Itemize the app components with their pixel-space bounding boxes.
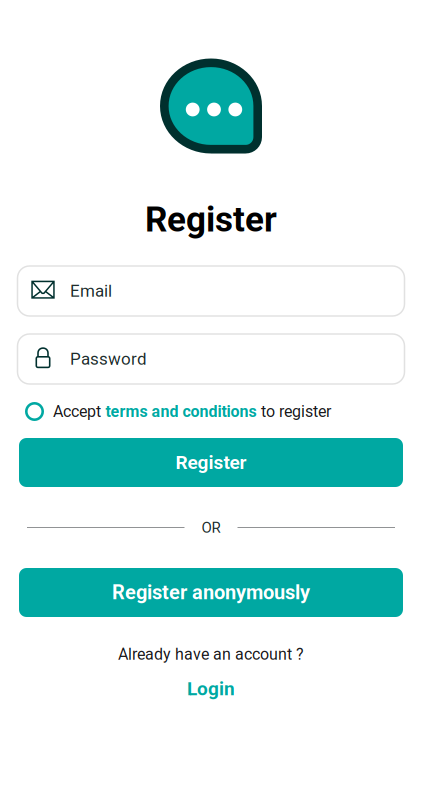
- button[interactable]: Register: [19, 438, 403, 487]
- staticText: terms and conditions: [105, 402, 256, 421]
- button[interactable]: Accept terms and conditions: [25, 402, 44, 421]
- staticText: to register: [261, 402, 331, 421]
- staticText: Register: [175, 451, 246, 474]
- staticText: Password: [70, 349, 147, 369]
- staticText: Already have an account ?: [118, 645, 304, 664]
- button[interactable]: Login: [187, 678, 235, 700]
- staticText: Register: [145, 199, 277, 240]
- button[interactable]: Register anonymously: [19, 568, 403, 617]
- staticText: Email: [70, 281, 112, 301]
- staticText: Register anonymously: [112, 581, 310, 604]
- staticText: OR: [201, 519, 220, 536]
- staticText: Login: [187, 678, 235, 700]
- staticText: Accept: [53, 402, 101, 421]
